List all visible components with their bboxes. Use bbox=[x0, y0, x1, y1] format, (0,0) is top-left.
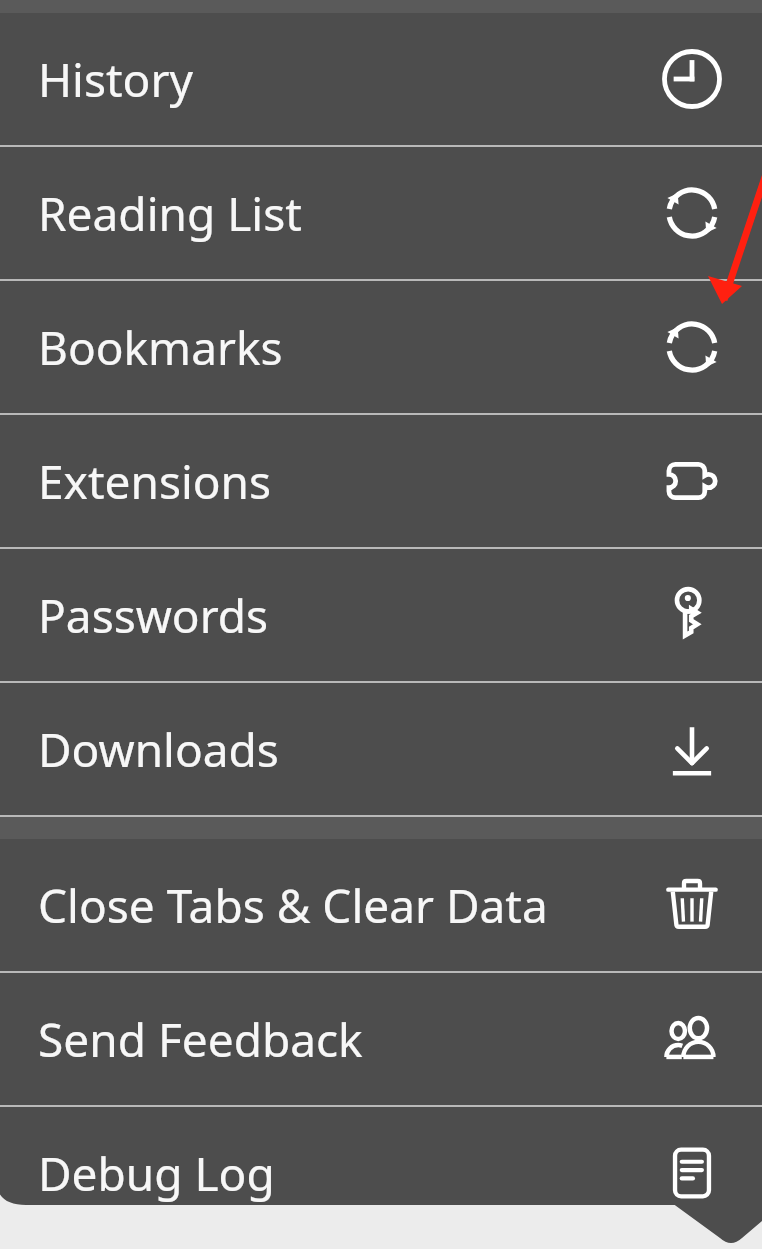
button[interactable]: Close Tabs & Clear Data bbox=[0, 839, 762, 971]
staticText: Downloads bbox=[38, 718, 622, 781]
staticText: Debug Log bbox=[38, 1142, 622, 1205]
button[interactable]: Debug Log bbox=[0, 1107, 762, 1239]
button[interactable]: History bbox=[0, 13, 762, 145]
staticText: Passwords bbox=[38, 584, 622, 647]
staticText: Reading List bbox=[38, 182, 622, 245]
button[interactable]: Reading List bbox=[0, 147, 762, 279]
other: Browser overflow menu bbox=[0, 0, 762, 1249]
button[interactable]: Extensions bbox=[0, 415, 762, 547]
button[interactable]: Passwords bbox=[0, 549, 762, 681]
button[interactable]: Bookmarks bbox=[0, 281, 762, 413]
staticText: Extensions bbox=[38, 450, 622, 513]
staticText: History bbox=[38, 48, 622, 111]
button[interactable]: Downloads bbox=[0, 683, 762, 815]
staticText: Send Feedback bbox=[38, 1008, 622, 1071]
button[interactable]: Send Feedback bbox=[0, 973, 762, 1105]
staticText: Close Tabs & Clear Data bbox=[38, 874, 622, 937]
staticText: Bookmarks bbox=[38, 316, 622, 379]
